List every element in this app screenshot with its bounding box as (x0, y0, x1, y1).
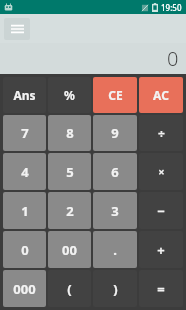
button[interactable]: 7 (3, 115, 46, 151)
staticText: ÷ (158, 125, 165, 141)
staticText: 1 (21, 202, 29, 220)
staticText: 000 (13, 280, 36, 298)
staticText: × (158, 164, 165, 179)
staticText: 4 (21, 163, 29, 181)
button[interactable]: . (93, 231, 137, 268)
staticText: 3 (111, 202, 119, 220)
staticText: 6 (111, 163, 119, 181)
button[interactable]: 6 (93, 153, 137, 190)
button[interactable]: Ans (3, 77, 46, 113)
button[interactable]: 3 (93, 192, 137, 229)
staticText: 00 (62, 241, 77, 259)
button[interactable]: − (139, 192, 183, 229)
staticText: 19:50 (161, 2, 182, 13)
button[interactable]: 4 (3, 153, 46, 190)
button[interactable]: 1 (3, 192, 46, 229)
staticText: 0 (167, 45, 179, 72)
staticText: − (157, 202, 165, 220)
button[interactable]: 5 (48, 153, 91, 190)
button[interactable]: ( (48, 270, 91, 307)
staticText: Ans (13, 87, 36, 103)
button[interactable]: 00 (48, 231, 91, 268)
button[interactable]: 000 (3, 270, 46, 307)
button[interactable]: 2 (48, 192, 91, 229)
staticText: 7 (21, 124, 29, 142)
button[interactable]: ) (93, 270, 137, 307)
button[interactable]: AC (139, 77, 183, 113)
button[interactable]: Menu (4, 18, 30, 40)
button[interactable]: % (48, 77, 91, 113)
staticText: CE (108, 87, 123, 103)
staticText: 5 (66, 163, 74, 181)
staticText: 0 (21, 241, 29, 259)
button[interactable]: 8 (48, 115, 91, 151)
staticText: . (113, 241, 117, 259)
button[interactable]: = (139, 270, 183, 307)
staticText: = (157, 280, 165, 298)
staticText: 9 (111, 124, 119, 142)
button[interactable]: 9 (93, 115, 137, 151)
staticText: AC (153, 87, 169, 103)
staticText: 2 (66, 202, 74, 220)
staticText: ( (67, 280, 72, 298)
button[interactable]: ÷ (139, 115, 183, 151)
staticText: 8 (66, 124, 74, 142)
button[interactable]: CE (93, 77, 137, 113)
button[interactable]: + (139, 231, 183, 268)
button[interactable]: × (139, 153, 183, 190)
staticText: + (157, 241, 165, 259)
staticText: % (64, 87, 75, 103)
button[interactable]: 0 (3, 231, 46, 268)
staticText: ) (113, 280, 118, 298)
